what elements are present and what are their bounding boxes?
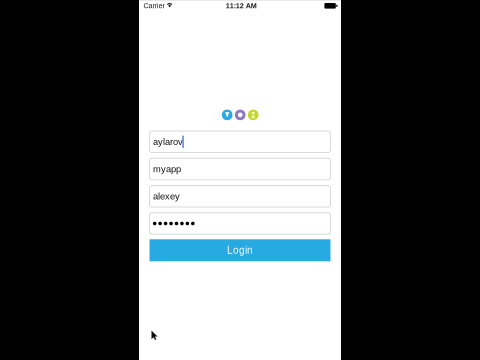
button[interactable]: Login <box>149 239 330 261</box>
button[interactable]: myapp <box>149 158 330 180</box>
staticText: Login <box>227 245 253 256</box>
staticText: Carrier <box>144 2 165 10</box>
staticText: alexey <box>153 191 180 201</box>
staticText: 11:12 AM <box>226 2 257 10</box>
button[interactable]: alexey <box>149 185 330 207</box>
staticText: myapp <box>153 164 181 174</box>
button[interactable] <box>149 213 330 234</box>
button[interactable]: aylarov <box>149 131 330 152</box>
staticText: aylarov <box>153 136 183 147</box>
